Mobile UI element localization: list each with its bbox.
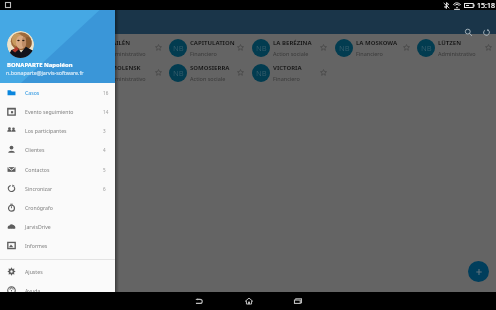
button[interactable]: Favourite [319,68,327,76]
button[interactable]: NB [248,36,331,61]
staticText: Action sociale [190,75,246,82]
button[interactable]: Add new [468,261,489,282]
staticText: NB [8,68,19,78]
staticText: Evento seguimiento [25,108,74,115]
button[interactable]: Favourite [402,43,410,51]
button[interactable]: Sincronizar [0,179,115,198]
button[interactable]: Favourite [154,68,162,76]
button[interactable]: NB [165,61,248,86]
staticText: NB [8,43,19,53]
button[interactable]: Favourite [319,43,327,51]
staticText: Casos [25,89,40,96]
staticText: LA BERÉZINA [273,39,329,47]
staticText: NB [256,68,267,78]
button[interactable]: Ayuda [0,281,115,300]
staticText: LÜTZEN [438,39,494,47]
staticText: JarvisDrive [25,223,51,230]
staticText: LA MOSKOWA [356,39,412,47]
staticText: Los participantes [25,127,67,134]
staticText: Clientes [25,146,45,153]
staticText: NB [339,43,350,53]
staticText: Financiero [25,75,81,82]
staticText: 6 [103,186,106,192]
staticText: VICTORIA [273,64,329,72]
staticText: SMOLENSK [108,64,164,72]
button[interactable]: Los participantes [0,121,115,140]
staticText: 4 [103,147,106,153]
button[interactable]: Evento seguimiento [0,102,115,121]
button[interactable]: Favourite [236,68,244,76]
staticText: Ayuda [25,287,41,294]
staticText: 15:18 [477,1,495,11]
staticText: NB [173,43,184,53]
staticText: NB [256,43,267,53]
button[interactable]: NB [165,36,248,61]
staticText: 16 [103,90,109,96]
button[interactable]: Contactos [0,160,115,179]
staticText: Action sociale [273,50,329,57]
button[interactable]: JarvisDrive [0,217,115,236]
staticText: Contactos [25,166,50,173]
staticText: Administrativo [108,75,164,82]
staticText: Administrativo [25,50,81,57]
staticText: CAPITULATION [190,39,246,47]
staticText: 14 [103,109,109,115]
staticText: 3 [103,128,106,134]
staticText: Informes [25,242,48,249]
staticText: Administrativo [108,50,164,57]
button[interactable]: Favourite [484,43,492,51]
staticText: SOMOSIERRA [190,64,246,72]
staticText: 5 [103,167,106,173]
staticText: BAILÉN [108,39,164,47]
button[interactable]: Ajustes [0,262,115,281]
button[interactable]: Clientes [0,140,115,159]
staticText: NB [421,43,432,53]
staticText: Financiero [273,75,329,82]
staticText: Financiero [356,50,412,57]
button[interactable]: Favourite [154,43,162,51]
button[interactable]: NB [83,61,166,86]
button[interactable]: NB [248,61,331,86]
staticText: MARENGO [25,64,81,72]
button[interactable]: Search [464,28,473,37]
staticText: Cronógrafo [25,204,53,211]
button[interactable]: Favourite [236,43,244,51]
staticText: Administrativo [438,50,494,57]
button[interactable]: NB [0,36,83,61]
staticText: Ajustes [25,268,43,275]
button[interactable]: NB [413,36,496,61]
staticText: Financiero [190,50,246,57]
staticText: Sincronizar [25,185,53,192]
button[interactable]: Home [240,292,257,309]
button[interactable]: NB [331,36,414,61]
button[interactable]: BONAPARTE Napoléon [0,10,115,83]
button[interactable]: NB [83,36,166,61]
staticText: NB [173,68,184,78]
button[interactable]: Casos [0,83,115,102]
button[interactable]: Back [190,292,207,309]
button[interactable]: Favourite [71,68,79,76]
button[interactable]: Refresh [482,28,491,37]
button[interactable]: Cronógrafo [0,198,115,217]
button[interactable]: NB [0,61,83,86]
staticText: n.bonaparte@jarvis-software.fr [6,69,84,76]
button[interactable]: Informes [0,236,115,255]
staticText: BONAPARTE Napoléon [7,61,73,69]
button[interactable]: Recent apps [289,292,306,309]
staticText: AUSTERLITZ [25,39,81,47]
